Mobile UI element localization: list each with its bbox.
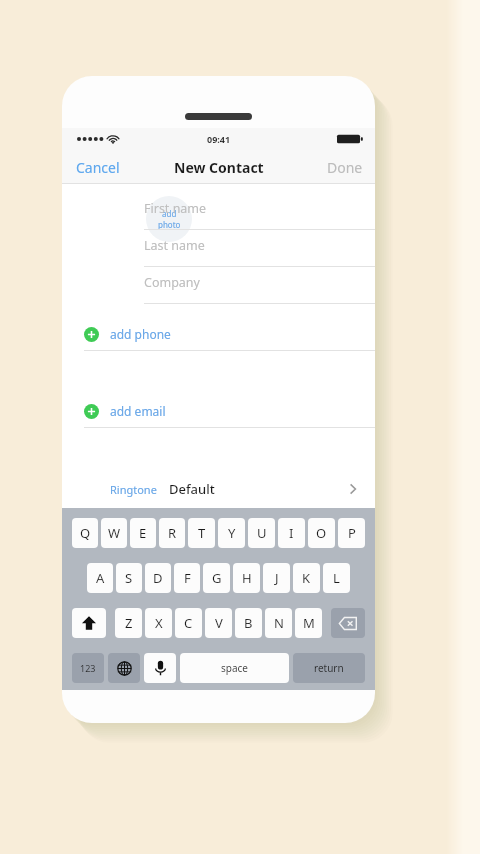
button[interactable]: N [265, 608, 292, 638]
staticText: N [274, 614, 284, 632]
button[interactable]: First name [144, 193, 375, 230]
button[interactable]: I [278, 518, 305, 548]
button[interactable]: Change language [108, 653, 140, 683]
button[interactable]: L [323, 563, 350, 593]
staticText: C [184, 614, 193, 632]
button[interactable]: R [159, 518, 185, 548]
staticText: O [316, 524, 327, 542]
button[interactable]: Last name [144, 230, 375, 267]
staticText: J [275, 569, 279, 587]
button[interactable]: K [293, 563, 320, 593]
staticText: R [168, 524, 177, 542]
button[interactable]: W [101, 518, 127, 548]
staticText: add email [110, 403, 166, 419]
staticText: S [125, 569, 133, 587]
staticText: H [242, 569, 252, 587]
staticText: Y [228, 524, 236, 542]
staticText: 09:41 [207, 133, 231, 145]
staticText: 123 [80, 662, 96, 674]
staticText: New Contact [174, 158, 264, 177]
button[interactable]: add phone [62, 320, 375, 348]
staticText: K [302, 569, 311, 587]
button[interactable]: Z [115, 608, 142, 638]
button[interactable]: X [145, 608, 172, 638]
staticText: L [333, 569, 340, 587]
staticText: F [184, 569, 191, 587]
button[interactable]: add email [62, 397, 375, 425]
staticText: Z [125, 614, 133, 632]
button[interactable]: Company [144, 267, 375, 304]
button[interactable]: A [87, 563, 113, 593]
button[interactable]: V [205, 608, 232, 638]
button[interactable]: U [248, 518, 275, 548]
button[interactable]: Cancel [62, 152, 134, 183]
button[interactable]: Shift [72, 608, 106, 638]
button[interactable]: B [235, 608, 262, 638]
button[interactable]: Add photo [146, 196, 192, 242]
staticText: M [303, 614, 315, 632]
staticText: B [244, 614, 253, 632]
staticText: G [212, 569, 222, 587]
staticText: Done [327, 158, 363, 177]
button[interactable]: Backspace [331, 608, 365, 638]
button[interactable]: E [130, 518, 156, 548]
button[interactable]: Dictate [144, 653, 176, 683]
staticText: Ringtone [110, 482, 157, 497]
button[interactable]: C [175, 608, 202, 638]
staticText: E [139, 524, 147, 542]
staticText: return [314, 661, 344, 675]
button[interactable]: return [293, 653, 365, 683]
staticText: W [108, 524, 121, 542]
button[interactable]: G [203, 563, 230, 593]
staticText: Default [169, 480, 215, 498]
button[interactable]: H [233, 563, 260, 593]
button[interactable]: O [308, 518, 335, 548]
staticText: A [96, 569, 105, 587]
staticText: U [257, 524, 267, 542]
button[interactable]: Ringtone [62, 474, 375, 504]
staticText: Cancel [76, 158, 120, 177]
button[interactable]: P [338, 518, 365, 548]
staticText: X [155, 614, 163, 632]
button[interactable]: Q [72, 518, 98, 548]
button[interactable]: T [188, 518, 215, 548]
staticText: P [348, 524, 356, 542]
button[interactable]: D [145, 563, 171, 593]
button[interactable]: S [116, 563, 142, 593]
staticText: D [153, 569, 163, 587]
staticText: Company [144, 274, 200, 291]
button[interactable]: F [174, 563, 200, 593]
staticText: add [162, 208, 177, 219]
button[interactable]: Done [315, 152, 375, 183]
staticText: V [215, 614, 223, 632]
staticText: First name [144, 200, 207, 217]
staticText: add phone [110, 326, 171, 342]
button[interactable]: 123 [72, 653, 104, 683]
staticText: Q [80, 524, 91, 542]
staticText: photo [158, 219, 181, 230]
staticText: I [289, 524, 294, 542]
staticText: Last name [144, 237, 205, 254]
button[interactable]: M [295, 608, 322, 638]
staticText: space [221, 661, 248, 675]
button[interactable]: space [180, 653, 289, 683]
button[interactable]: Y [218, 518, 245, 548]
button[interactable]: J [263, 563, 290, 593]
staticText: T [198, 524, 206, 542]
